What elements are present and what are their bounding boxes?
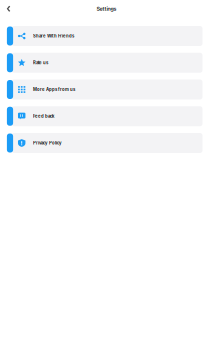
staticText: Settings [96,5,116,12]
staticText: Share With Friends [33,33,74,39]
button[interactable]: More Apps from us [0,79,213,99]
button[interactable]: Rate us [0,53,213,73]
button[interactable]: Privacy Policy [0,133,213,153]
button[interactable]: Feed back [0,106,213,126]
staticText: More Apps from us [33,87,75,92]
button[interactable]: Back [1,2,15,16]
staticText: Rate us [33,60,48,65]
staticText: Feed back [33,114,54,119]
button[interactable]: Share With Friends [0,26,213,46]
staticText: Privacy Policy [33,140,62,146]
